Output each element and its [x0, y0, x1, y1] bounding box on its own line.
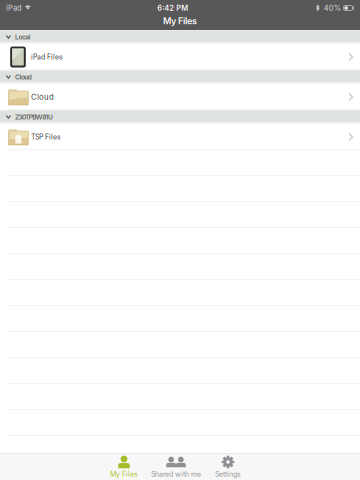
button[interactable]: Cloud: [0, 70, 360, 84]
staticText: Cloud: [15, 73, 32, 81]
staticText: TSP Files: [31, 133, 61, 141]
staticText: iPad Files: [31, 53, 63, 61]
button[interactable]: TSP Files: [0, 124, 360, 150]
button[interactable]: Shared with me: [150, 454, 202, 480]
button[interactable]: My Files: [98, 454, 150, 480]
button[interactable]: Cloud: [0, 84, 360, 110]
staticText: Cloud: [31, 92, 54, 102]
button[interactable]: Local: [0, 30, 360, 44]
staticText: 6:42 PM: [157, 3, 188, 12]
staticText: Local: [15, 33, 31, 41]
staticText: Settings: [215, 470, 241, 478]
staticText: My Files: [163, 15, 197, 26]
staticText: 40%: [324, 3, 341, 12]
staticText: Z30TPBW81U: [15, 113, 53, 121]
button[interactable]: Z30TPBW81U: [0, 110, 360, 124]
button[interactable]: iPad Files: [0, 44, 360, 70]
staticText: My Files: [110, 470, 138, 478]
button[interactable]: Settings: [202, 454, 254, 480]
staticText: iPad: [6, 3, 22, 12]
staticText: Shared with me: [151, 470, 201, 478]
